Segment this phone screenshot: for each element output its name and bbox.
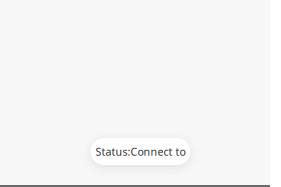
staticText: Status:Connect to: [95, 144, 185, 159]
button[interactable]: Status:Connect to: [90, 138, 190, 165]
